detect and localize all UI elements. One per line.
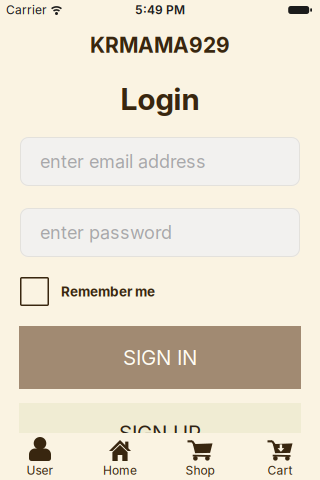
staticText: 5:49 PM xyxy=(135,3,185,17)
staticText: SIGN UP xyxy=(119,421,201,445)
button[interactable]: Shop xyxy=(160,433,240,480)
staticText: Login xyxy=(120,81,199,117)
button[interactable]: SIGN IN xyxy=(19,326,301,389)
button[interactable]: enter email address xyxy=(20,137,300,186)
staticText: User xyxy=(26,463,53,477)
staticText: KRMAMA929 xyxy=(90,32,230,58)
staticText: Home xyxy=(103,463,137,477)
staticText: enter email address xyxy=(40,151,206,172)
button[interactable]: Cart xyxy=(240,433,320,480)
button[interactable]: User xyxy=(0,433,80,480)
staticText: Carrier xyxy=(6,3,47,17)
staticText: Cart xyxy=(267,463,292,477)
button[interactable]: Remember me xyxy=(20,277,49,306)
button[interactable]: SIGN UP xyxy=(19,403,301,463)
staticText: enter password xyxy=(40,222,172,243)
staticText: Shop xyxy=(185,463,214,477)
staticText: SIGN IN xyxy=(123,345,197,370)
button[interactable]: enter password xyxy=(20,208,300,257)
staticText: Remember me xyxy=(61,283,155,300)
button[interactable]: Home xyxy=(80,433,160,480)
